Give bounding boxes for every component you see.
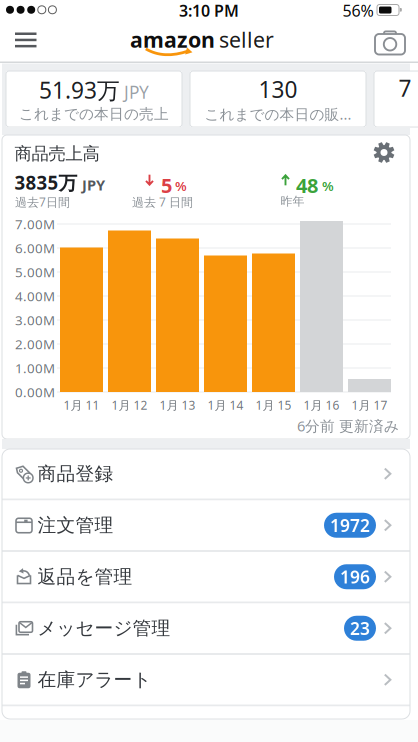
staticText: これまでの本日の売上 <box>19 105 169 123</box>
staticText: amazon <box>130 25 215 54</box>
button[interactable]: 7 <box>374 71 418 127</box>
staticText: これまでの本日の販... <box>204 104 351 124</box>
staticText: 5.00M <box>15 263 55 281</box>
staticText: 1.00M <box>15 359 55 377</box>
staticText: 1月 17 <box>351 397 387 413</box>
staticText: 3:10 PM <box>179 0 239 21</box>
button[interactable]: メッセージ管理 <box>2 603 410 653</box>
staticText: 1月 12 <box>111 397 147 413</box>
staticText: 1972 <box>330 514 370 537</box>
staticText: 過去 7 日間 <box>132 194 193 210</box>
staticText: seller <box>219 25 274 54</box>
staticText: 130 <box>258 74 297 104</box>
staticText: 1月 11 <box>63 397 99 413</box>
staticText: 48 <box>296 172 318 199</box>
staticText: 1月 14 <box>207 397 243 413</box>
staticText: 196 <box>340 565 370 588</box>
staticText: % <box>175 177 187 195</box>
button[interactable]: 51.93万 <box>6 71 182 127</box>
staticText: 注文管理 <box>37 514 113 537</box>
button[interactable]: 130 <box>190 71 366 127</box>
staticText: 6分前 更新済み <box>297 416 399 435</box>
staticText: 0.00M <box>15 383 55 401</box>
staticText: 51.93万 <box>39 75 120 105</box>
button[interactable]: 在庫アラート <box>2 655 410 704</box>
staticText: 4.00M <box>15 287 55 305</box>
button[interactable]: Menu <box>7 24 44 55</box>
staticText: 3835万 <box>14 170 77 195</box>
staticText: 3.00M <box>15 311 55 329</box>
staticText: 7.00M <box>15 215 55 233</box>
staticText: 商品登録 <box>37 462 113 485</box>
staticText: 1月 16 <box>303 397 339 413</box>
staticText: 1月 15 <box>255 397 291 413</box>
staticText: 56% <box>342 0 373 21</box>
staticText: 7 <box>398 73 411 103</box>
staticText: 商品売上高 <box>14 143 99 164</box>
staticText: 過去7日間 <box>15 194 70 210</box>
staticText: 昨年 <box>280 194 304 209</box>
button[interactable]: 返品を管理 <box>2 552 410 601</box>
staticText: 5 <box>161 172 172 199</box>
staticText: 23 <box>350 617 370 640</box>
staticText: JPY <box>124 81 149 104</box>
button[interactable]: 注文管理 <box>2 500 410 550</box>
button[interactable]: Camera <box>368 24 411 61</box>
button[interactable]: 商品登録 <box>2 449 410 498</box>
staticText: JPY <box>82 175 105 194</box>
staticText: 6.00M <box>15 239 55 257</box>
staticText: メッセージ管理 <box>37 617 170 640</box>
staticText: % <box>322 177 334 195</box>
button[interactable]: Settings <box>367 136 400 169</box>
staticText: 返品を管理 <box>37 565 132 588</box>
staticText: 1月 13 <box>159 397 195 413</box>
staticText: 在庫アラート <box>37 668 151 691</box>
staticText: 2.00M <box>15 335 55 353</box>
